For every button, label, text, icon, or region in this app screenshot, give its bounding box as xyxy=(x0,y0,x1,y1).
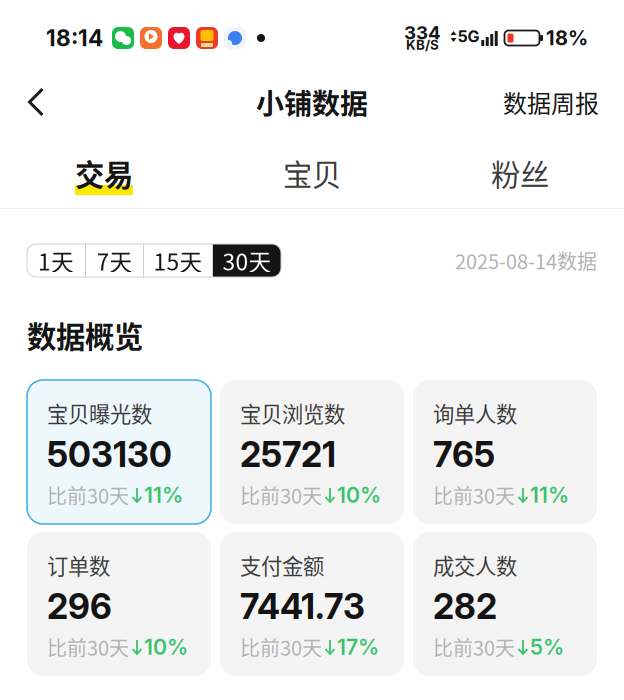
staticText: 18% xyxy=(546,26,588,50)
button[interactable]: 交易 xyxy=(0,138,208,208)
staticText: 15天 xyxy=(153,244,202,277)
button[interactable]: 15天 xyxy=(144,244,212,277)
staticText: 18:14 xyxy=(46,24,103,52)
staticText: 334 xyxy=(404,21,441,44)
staticText: 比前30天 xyxy=(433,480,515,509)
button[interactable]: 宝贝曝光数 xyxy=(27,380,211,524)
button[interactable]: 宝贝 xyxy=(208,138,416,208)
staticText: 11% xyxy=(530,482,569,508)
staticText: 7天 xyxy=(96,244,132,277)
button[interactable]: 宝贝浏览数 xyxy=(220,380,404,524)
button[interactable]: 粉丝 xyxy=(416,138,624,208)
staticText: 支付金额 xyxy=(240,550,324,580)
button[interactable]: 询单人数 xyxy=(413,380,597,524)
button[interactable]: 支付金额 xyxy=(220,532,404,676)
button[interactable]: 7天 xyxy=(86,244,143,277)
staticText: 5% xyxy=(530,634,564,660)
staticText: 交易 xyxy=(75,152,133,194)
button[interactable]: Back xyxy=(0,74,72,130)
staticText: 11% xyxy=(144,482,183,508)
staticText: 比前30天 xyxy=(47,480,129,509)
staticText: KB/S xyxy=(406,37,439,53)
staticText: 比前30天 xyxy=(240,632,322,661)
button[interactable]: 成交人数 xyxy=(413,532,597,676)
staticText: 比前30天 xyxy=(47,632,129,661)
button[interactable]: 30天 xyxy=(213,244,281,277)
staticText: 数据概览 xyxy=(27,314,143,356)
button[interactable]: 数据周报 xyxy=(478,74,624,130)
staticText: 503130 xyxy=(47,433,172,475)
staticText: 2025-08-14数据 xyxy=(455,246,597,275)
staticText: 10% xyxy=(337,482,381,508)
button[interactable]: 订单数 xyxy=(27,532,211,676)
staticText: 比前30天 xyxy=(433,632,515,661)
staticText: 小铺数据 xyxy=(256,82,368,122)
staticText: 1天 xyxy=(38,244,74,277)
staticText: 25721 xyxy=(240,433,336,475)
staticText: 询单人数 xyxy=(433,398,517,428)
staticText: 宝贝曝光数 xyxy=(47,398,152,428)
staticText: 数据周报 xyxy=(503,85,599,119)
staticText: 宝贝浏览数 xyxy=(240,398,345,428)
staticText: 296 xyxy=(47,585,112,627)
staticText: 比前30天 xyxy=(240,480,322,509)
staticText: 宝贝 xyxy=(283,152,341,194)
staticText: 5G xyxy=(457,27,479,46)
staticText: 30天 xyxy=(222,244,271,277)
button[interactable]: 1天 xyxy=(27,244,85,277)
staticText: 粉丝 xyxy=(491,152,549,194)
staticText: 7441.73 xyxy=(240,585,365,627)
staticText: 17% xyxy=(337,634,379,660)
staticText: 订单数 xyxy=(47,550,110,580)
staticText: 282 xyxy=(433,585,497,627)
staticText: 765 xyxy=(433,433,495,475)
staticText: 10% xyxy=(144,634,188,660)
staticText: 成交人数 xyxy=(433,550,517,580)
